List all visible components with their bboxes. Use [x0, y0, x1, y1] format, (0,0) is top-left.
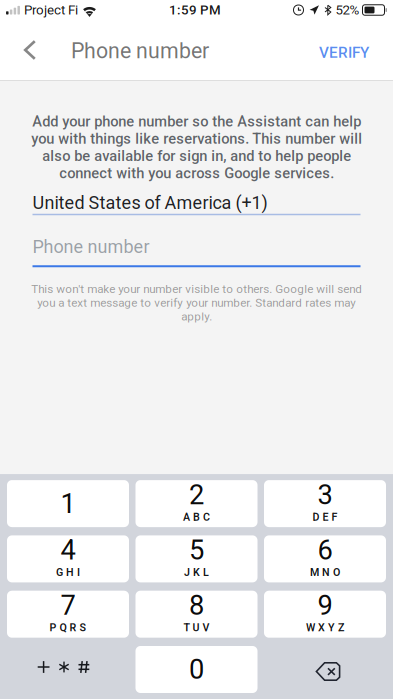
staticText: 3	[317, 479, 332, 511]
staticText: M N O	[310, 566, 340, 579]
staticText: 1	[60, 488, 75, 520]
staticText: VERIFY	[319, 43, 369, 61]
staticText: 4	[60, 534, 75, 566]
staticText: 1:59 PM	[169, 2, 221, 18]
button[interactable]: Phone number	[32, 236, 360, 265]
button[interactable]: Plus asterisk pound	[7, 646, 129, 693]
button[interactable]: 1	[7, 480, 129, 527]
staticText: A B C	[183, 511, 210, 523]
staticText: Project Fi	[24, 2, 78, 18]
staticText: 52%	[335, 2, 359, 18]
button[interactable]: 0	[135, 646, 257, 693]
staticText: 7	[60, 589, 75, 621]
staticText: United States of America (+1)	[32, 192, 267, 213]
staticText: 5	[189, 534, 204, 566]
staticText: Phone number	[32, 236, 149, 257]
button[interactable]: 7	[7, 591, 129, 638]
button[interactable]: United States of America (+1)	[32, 192, 360, 214]
button[interactable]: 4	[7, 535, 129, 582]
button[interactable]: VERIFY	[295, 20, 393, 80]
staticText: W X Y Z	[306, 621, 344, 634]
staticText: 2	[189, 479, 204, 511]
staticText: This won't make your number visible to o…	[31, 282, 362, 323]
button[interactable]: 5	[135, 535, 257, 582]
staticText: Phone number	[71, 38, 209, 63]
staticText: 6	[317, 534, 332, 566]
button[interactable]: Delete	[264, 646, 386, 693]
staticText: 8	[189, 589, 204, 621]
staticText: Add your phone number so the Assistant c…	[31, 113, 362, 182]
staticText: P Q R S	[49, 621, 86, 634]
staticText: J K L	[184, 566, 209, 579]
button[interactable]: 9	[264, 591, 386, 638]
staticText: 0	[189, 653, 204, 685]
button[interactable]: 6	[264, 535, 386, 582]
button[interactable]: Back	[0, 20, 48, 80]
button[interactable]: 3	[264, 480, 386, 527]
staticText: G H I	[56, 566, 80, 579]
button[interactable]: 8	[135, 591, 257, 638]
button[interactable]: 2	[135, 480, 257, 527]
staticText: 9	[317, 589, 332, 621]
staticText: T U V	[183, 621, 209, 634]
staticText: D E F	[312, 511, 337, 523]
